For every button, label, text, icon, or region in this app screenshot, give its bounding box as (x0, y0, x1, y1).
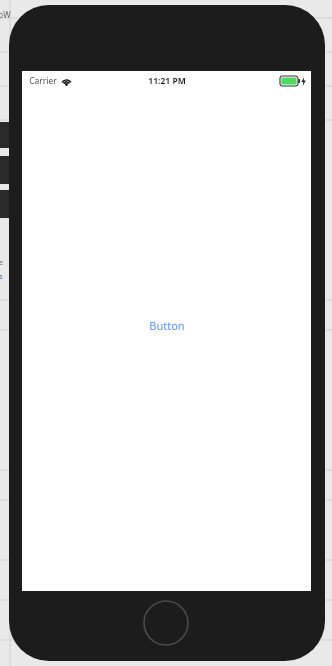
button[interactable]: Button (141, 314, 193, 337)
staticText: oW (0, 9, 11, 20)
button[interactable]: Home (143, 600, 189, 646)
staticText: s (0, 272, 3, 282)
staticText: Button (149, 318, 185, 333)
staticText: Carrier (29, 75, 57, 87)
staticText: e (0, 258, 3, 268)
staticText: 11:21 PM (148, 75, 186, 87)
